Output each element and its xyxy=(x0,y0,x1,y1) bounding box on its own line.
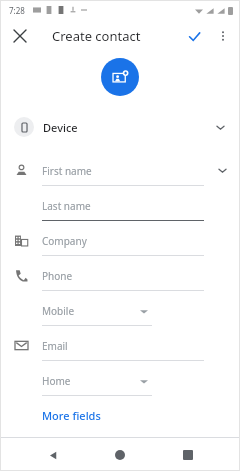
button[interactable]: More options xyxy=(212,25,234,47)
staticText: Last name xyxy=(42,199,91,213)
button[interactable]: Recent apps xyxy=(173,440,203,470)
staticText: 7:28 xyxy=(9,5,25,16)
button[interactable]: Mobile xyxy=(0,293,240,328)
staticText: Device xyxy=(43,120,78,135)
staticText: Create contact xyxy=(52,27,141,45)
staticText: More fields xyxy=(42,408,101,423)
staticText: Email xyxy=(42,339,68,353)
button[interactable]: Close xyxy=(8,24,32,48)
button[interactable]: Device xyxy=(0,110,240,144)
staticText: Mobile xyxy=(42,304,75,318)
staticText: First name xyxy=(42,164,92,178)
button[interactable]: Home xyxy=(0,363,240,398)
staticText: Phone xyxy=(42,269,73,283)
button[interactable]: Back xyxy=(38,440,68,470)
button[interactable]: Save xyxy=(182,24,206,48)
button[interactable]: Last name xyxy=(0,188,240,223)
button[interactable]: Company xyxy=(0,223,240,258)
button[interactable]: Add photo xyxy=(101,58,139,96)
button[interactable]: Home xyxy=(105,440,135,470)
staticText: Home xyxy=(42,374,71,388)
button[interactable]: Phone xyxy=(0,258,240,293)
staticText: Company xyxy=(42,234,87,248)
button[interactable]: First name xyxy=(0,153,240,188)
button[interactable]: Email xyxy=(0,328,240,363)
